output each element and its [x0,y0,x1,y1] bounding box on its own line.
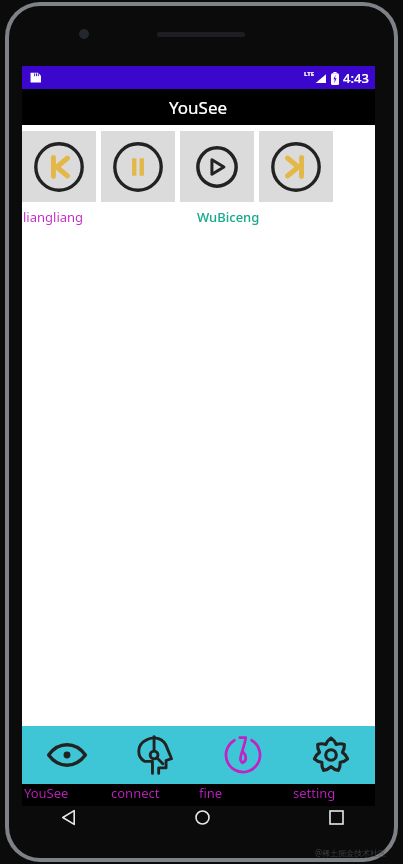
staticText: YouSee [169,96,228,119]
staticText: @稀土掘金技术社区 [315,847,387,858]
button[interactable]: Back [48,800,88,834]
button[interactable]: Previous [22,131,96,202]
button[interactable]: Recents [316,800,356,834]
button[interactable]: fine [199,726,287,784]
staticText: 4:43 [343,69,369,87]
button[interactable]: Next [259,131,333,202]
staticText: LTE [304,70,315,78]
button[interactable]: connect [111,726,199,784]
button[interactable]: Pause [101,131,175,202]
staticText: connect [111,784,160,802]
button[interactable]: Play [180,131,254,202]
staticText: WuBiceng [197,208,260,226]
staticText: setting [293,784,336,802]
staticText: liangliang [23,208,84,226]
button[interactable]: setting [287,726,375,784]
button[interactable]: YouSee [22,726,111,784]
staticText: YouSee [24,784,69,802]
staticText: fine [199,784,223,802]
button[interactable]: Home [182,800,222,834]
